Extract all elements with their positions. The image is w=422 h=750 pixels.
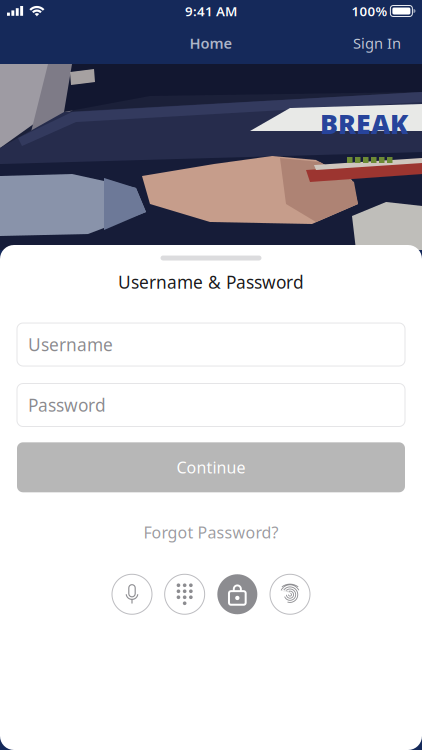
staticText: Username & Password: [118, 270, 304, 293]
staticText: Sign In: [353, 33, 401, 53]
staticText: BREAK: [320, 106, 408, 141]
staticText: 100%: [351, 2, 387, 20]
button[interactable]: Voice login: [106, 568, 158, 620]
button[interactable]: Keypad: [158, 568, 211, 620]
button[interactable]: Touch ID: [264, 568, 316, 620]
button[interactable]: Username: [17, 323, 405, 366]
staticText: Continue: [176, 457, 245, 478]
staticText: Username: [28, 333, 113, 356]
staticText: Password: [28, 393, 106, 416]
button[interactable]: Lock: [211, 568, 264, 620]
staticText: 9:41 AM: [185, 2, 237, 20]
button[interactable]: Sign In: [343, 25, 411, 61]
button[interactable]: Password: [17, 383, 405, 426]
staticText: Forgot Password?: [143, 522, 278, 543]
staticText: Home: [189, 33, 232, 53]
button[interactable]: Continue: [17, 442, 405, 492]
button[interactable]: Forgot Password?: [133, 516, 288, 549]
